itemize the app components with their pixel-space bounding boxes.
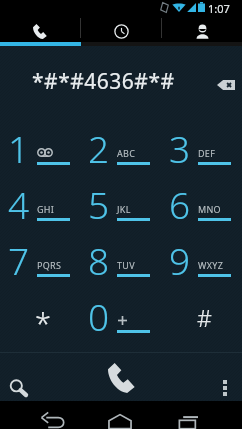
staticText: JKL [117,203,131,215]
button[interactable]: Contacts [162,14,242,42]
staticText: GHI [37,203,55,215]
button[interactable]: Recent apps [165,403,213,429]
staticText: WXYZ [198,259,224,271]
staticText: 2 [88,123,110,173]
button[interactable]: 4 [0,178,80,234]
staticText: 1 [8,123,30,173]
staticText: TUV [117,259,135,271]
staticText: MNO [198,203,221,215]
button[interactable]: 8 [80,234,161,290]
button[interactable]: Backspace [211,70,241,100]
button[interactable]: 1 [0,122,80,178]
button[interactable]: Search [0,362,42,400]
staticText: PQRS [37,259,62,271]
button[interactable]: 7 [0,234,80,290]
staticText: 1:07 [208,1,230,15]
button[interactable]: More options [206,362,242,400]
staticText: ABC [117,147,136,159]
staticText: 0 [88,291,110,341]
staticText: 3 [169,123,191,173]
button[interactable]: 3 [161,122,242,178]
button[interactable]: 5 [80,178,161,234]
staticText: 5 [88,179,110,229]
button[interactable]: Call log [81,14,161,42]
button[interactable]: # [161,290,242,346]
staticText: * [35,303,51,342]
button[interactable]: Call [100,358,146,400]
button[interactable]: 0 [80,290,161,346]
staticText: # [197,302,212,333]
button[interactable]: 6 [161,178,242,234]
staticText: 9 [169,235,191,285]
button[interactable]: * [0,290,80,346]
staticText: 8 [88,235,110,285]
button[interactable]: 2 [80,122,161,178]
staticText: *#*#4636#*# [32,67,175,96]
staticText: 7 [8,235,30,285]
button[interactable]: 9 [161,234,242,290]
staticText: DEF [198,147,216,159]
staticText: 4 [8,179,30,229]
button[interactable]: Back [30,403,78,429]
button[interactable]: Dial pad [0,14,80,42]
staticText: 6 [169,179,191,229]
button[interactable]: Home [96,403,144,429]
